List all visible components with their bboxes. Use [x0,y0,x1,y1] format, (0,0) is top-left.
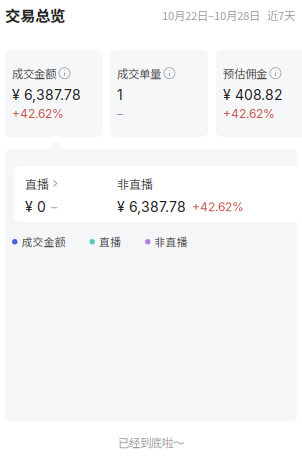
button[interactable]: 直播 [25,175,117,215]
staticText: 近7天 [267,7,295,23]
staticText: 直播 [25,175,49,192]
staticText: 交易总览 [5,4,65,26]
staticText: +42.62% [12,106,64,121]
staticText: ¥ 0 [25,198,46,215]
staticText: 非直播 [117,175,153,192]
staticText: 非直播 [154,234,187,249]
staticText: 已经到底啦～ [118,434,184,450]
staticText: 预估佣金 [223,65,267,81]
staticText: +42.62% [223,106,275,121]
staticText: 直播 [99,234,121,249]
button[interactable]: 预估佣金 [216,50,302,137]
staticText: 1 [117,86,123,103]
staticText: 成交单量 [117,65,161,81]
staticText: 成交金额 [21,234,65,249]
staticText: 成交金额 [12,65,56,81]
staticText: – [117,106,123,121]
staticText: ¥ 408.82 [223,86,283,103]
staticText: 10月22日–10月28日 [162,7,260,23]
button[interactable]: 10月22日–10月28日 [162,7,295,23]
staticText: +42.62% [192,200,244,214]
staticText: ¥ 6,387.78 [117,198,186,215]
button[interactable]: 成交单量 [110,50,208,137]
button[interactable]: 成交金额 [5,50,103,137]
staticText: ¥ 6,387.78 [12,86,81,103]
staticText: – [51,200,57,214]
